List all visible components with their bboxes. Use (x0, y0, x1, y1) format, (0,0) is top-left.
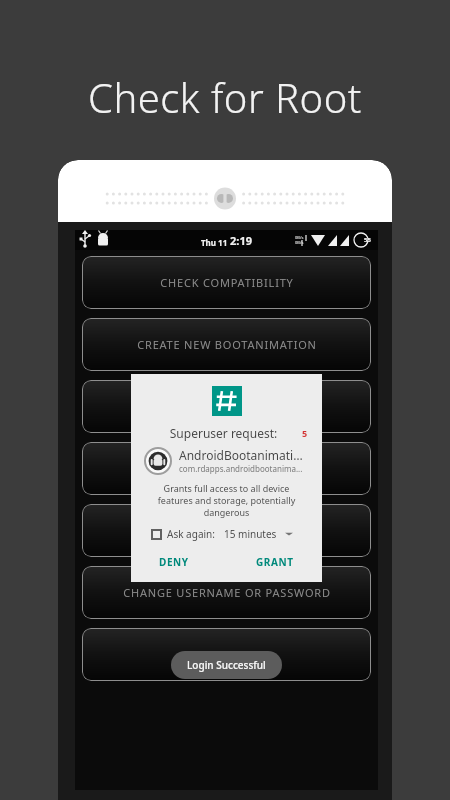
button[interactable]: CREATE NEW BOOTANIMATION (82, 318, 371, 371)
staticText: CHECK COMPATIBILITY (160, 275, 294, 290)
staticText: CREATE NEW BOOTANIMATION (137, 337, 317, 352)
staticText: Grants full access to all device feature… (145, 482, 308, 518)
button[interactable] (82, 380, 371, 433)
staticText: AndroidBootanimationC... (179, 447, 308, 463)
staticText: 0B/s (295, 235, 304, 240)
other: Expand (285, 530, 293, 538)
staticText: 55 (364, 236, 371, 244)
staticText: 2:19 (230, 233, 252, 248)
button[interactable]: GRANT (242, 550, 308, 574)
staticText: Check for Root (88, 70, 362, 124)
button[interactable] (82, 504, 371, 557)
staticText: 15 minutes (224, 527, 277, 541)
button[interactable]: Ask again: (145, 527, 308, 541)
button[interactable]: ABOUT ME (82, 628, 371, 681)
button[interactable]: DENY (145, 550, 203, 574)
staticText: CHANGE USERNAME OR PASSWORD (123, 585, 331, 600)
button[interactable]: CHANGE USERNAME OR PASSWORD (82, 566, 371, 619)
staticText: DENY (159, 555, 189, 569)
button[interactable] (82, 442, 371, 495)
staticText: 0B/s (295, 240, 304, 245)
staticText: com.rdapps.androidbootanima... (179, 463, 303, 474)
staticText: Ask again: (167, 527, 215, 541)
staticText: ABOUT ME (195, 647, 258, 662)
button[interactable]: CHECK COMPATIBILITY (82, 256, 371, 309)
staticText: 5 (302, 427, 308, 439)
staticText: GRANT (256, 555, 294, 569)
staticText: Login Successful (187, 658, 266, 672)
staticText: Superuser request: (145, 425, 302, 441)
staticText: Thu 11 (201, 237, 230, 248)
